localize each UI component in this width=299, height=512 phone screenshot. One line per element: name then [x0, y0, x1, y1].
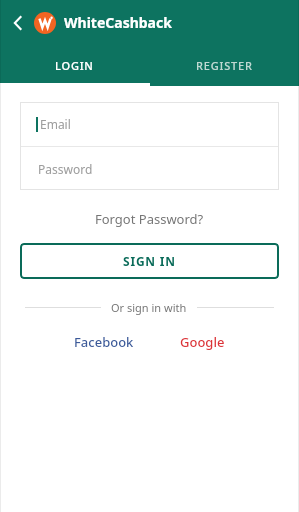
- button[interactable]: Google: [170, 329, 235, 355]
- staticText: LOGIN: [55, 58, 94, 73]
- button[interactable]: LOGIN: [0, 45, 149, 86]
- staticText: Facebook: [74, 333, 134, 351]
- staticText: Google: [180, 333, 225, 351]
- staticText: SIGN IN: [123, 253, 176, 269]
- staticText: Email: [40, 116, 71, 132]
- button[interactable]: Email: [20, 102, 279, 146]
- staticText: WhiteCashback: [64, 13, 172, 32]
- button[interactable]: Forgot Password?: [87, 206, 212, 232]
- button[interactable]: Password: [20, 147, 279, 190]
- staticText: Or sign in with: [111, 300, 187, 315]
- button[interactable]: Facebook: [64, 329, 144, 355]
- button[interactable]: SIGN IN: [20, 243, 279, 279]
- staticText: Password: [38, 161, 93, 177]
- button[interactable]: REGISTER: [149, 45, 299, 86]
- button[interactable]: Back: [6, 11, 30, 35]
- staticText: Forgot Password?: [95, 210, 204, 228]
- staticText: REGISTER: [196, 58, 253, 73]
